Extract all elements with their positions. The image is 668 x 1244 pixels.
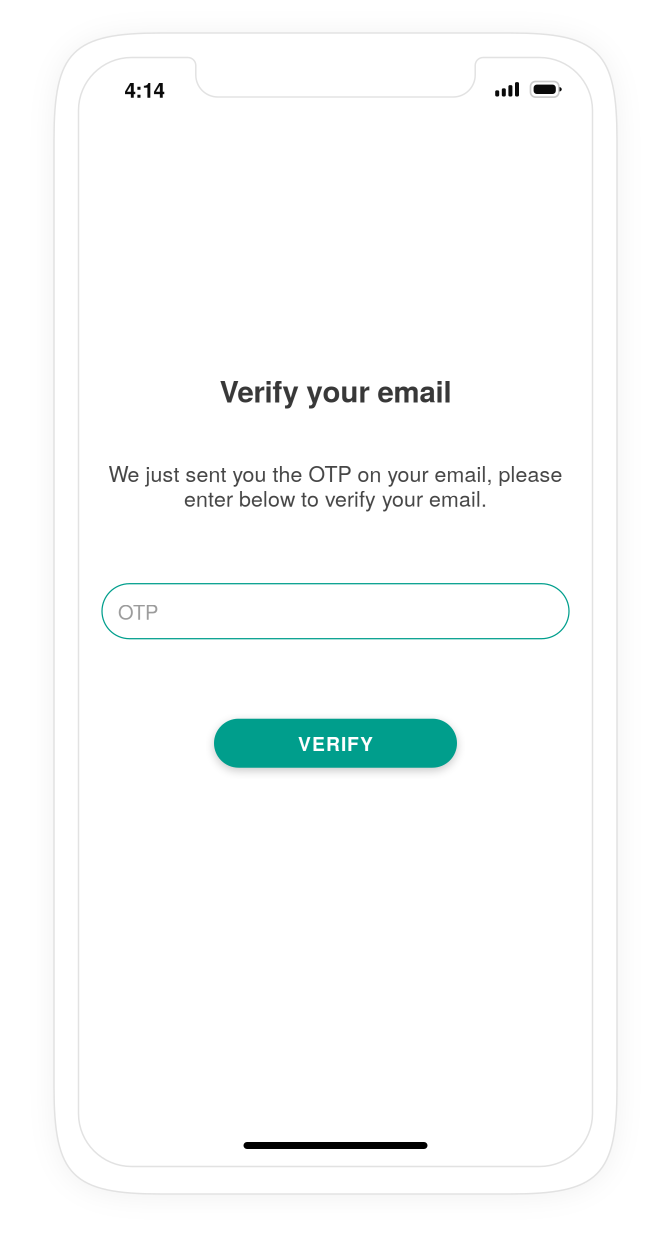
- staticText: We just sent you the OTP on your email, …: [108, 458, 562, 488]
- button[interactable]: OTP: [102, 584, 569, 639]
- staticText: OTP: [118, 597, 158, 625]
- staticText: Verify your email: [219, 370, 451, 412]
- staticText: enter below to verify your email.: [184, 482, 487, 513]
- staticText: 4:14: [124, 74, 164, 104]
- button[interactable]: VERIFY: [214, 719, 457, 768]
- staticText: VERIFY: [298, 729, 373, 757]
